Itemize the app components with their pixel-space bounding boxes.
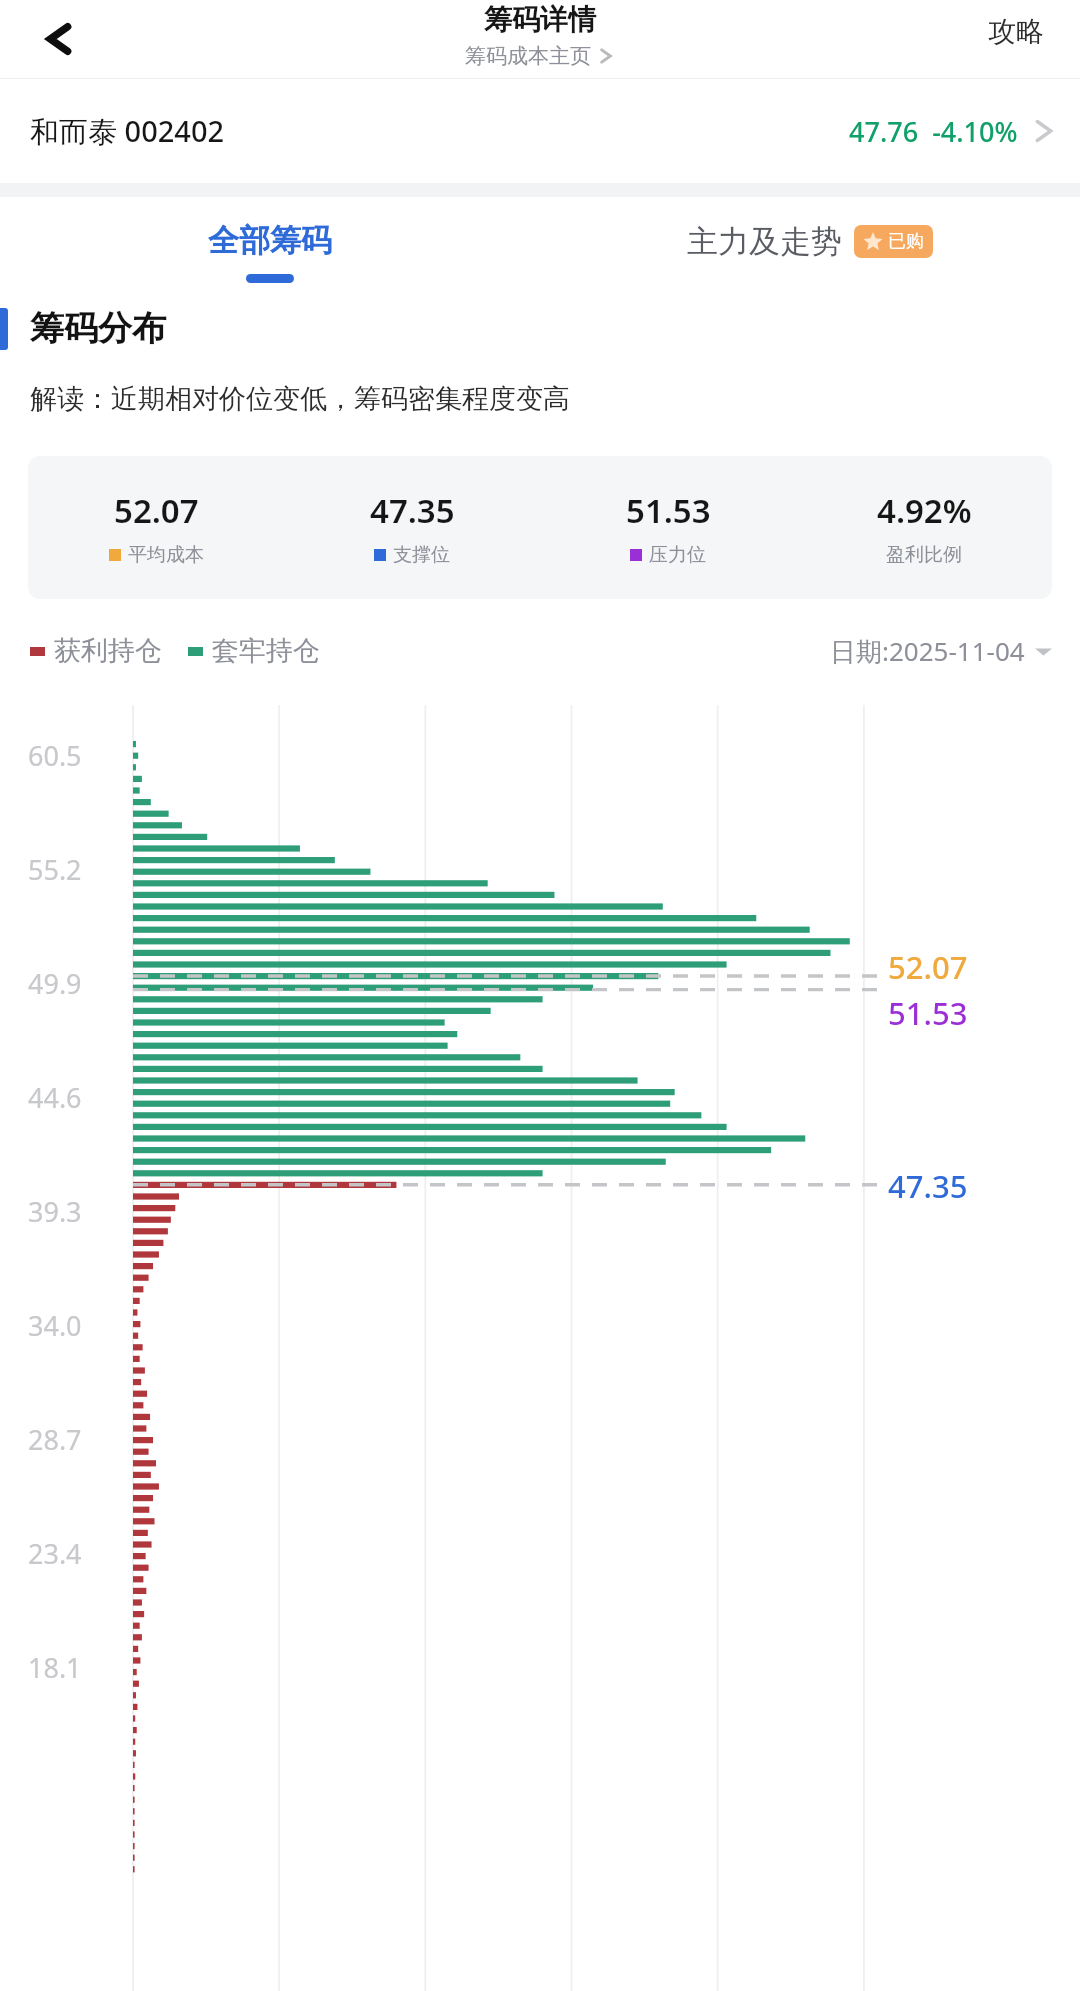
- button[interactable]: 主力及走势: [540, 197, 1080, 307]
- staticText: 攻略: [988, 14, 1044, 49]
- staticText: 34.0: [28, 1307, 82, 1344]
- staticText: 支撑位: [393, 543, 450, 567]
- staticText: 筹码成本主页: [465, 43, 591, 69]
- staticText: 筹码分布: [30, 307, 166, 350]
- staticText: 47.35: [370, 488, 455, 533]
- staticText: 已购: [888, 230, 924, 253]
- staticText: 解读：近期相对价位变低，筹码密集程度变高: [30, 382, 570, 416]
- staticText: 49.9: [28, 965, 82, 1002]
- staticText: 52.07: [888, 946, 968, 988]
- button[interactable]: 全部筹码: [0, 197, 540, 307]
- staticText: 55.2: [28, 851, 82, 888]
- staticText: 47.35: [888, 1165, 968, 1207]
- staticText: 压力位: [649, 543, 706, 567]
- button[interactable]: 日期:2025-11-04: [830, 633, 1052, 669]
- staticText: 套牢持仓: [212, 634, 320, 668]
- staticText: 筹码详情: [484, 2, 596, 37]
- staticText: 盈利比例: [886, 543, 962, 567]
- staticText: 18.1: [28, 1649, 82, 1686]
- staticText: 51.53: [888, 992, 968, 1034]
- staticText: 60.5: [28, 737, 82, 774]
- button[interactable]: 攻略: [978, 6, 1054, 57]
- staticText: 获利持仓: [54, 634, 162, 668]
- staticText: 主力及走势: [687, 222, 842, 261]
- staticText: 全部筹码: [208, 221, 332, 260]
- staticText: 和而泰 002402: [30, 111, 225, 151]
- staticText: 52.07: [114, 488, 199, 533]
- staticText: 51.53: [626, 488, 711, 533]
- staticText: 平均成本: [128, 543, 204, 567]
- staticText: 39.3: [28, 1193, 82, 1230]
- staticText: 44.6: [28, 1079, 82, 1116]
- staticText: 28.7: [28, 1421, 82, 1458]
- staticText: 23.4: [28, 1535, 82, 1572]
- staticText: 47.76 -4.10%: [849, 113, 1018, 150]
- button[interactable]: Back: [30, 10, 88, 68]
- staticText: 日期:2025-11-04: [830, 633, 1025, 669]
- staticText: 4.92%: [877, 488, 972, 533]
- button[interactable]: 和而泰 002402: [0, 79, 1080, 183]
- button[interactable]: 筹码成本主页: [465, 43, 615, 69]
